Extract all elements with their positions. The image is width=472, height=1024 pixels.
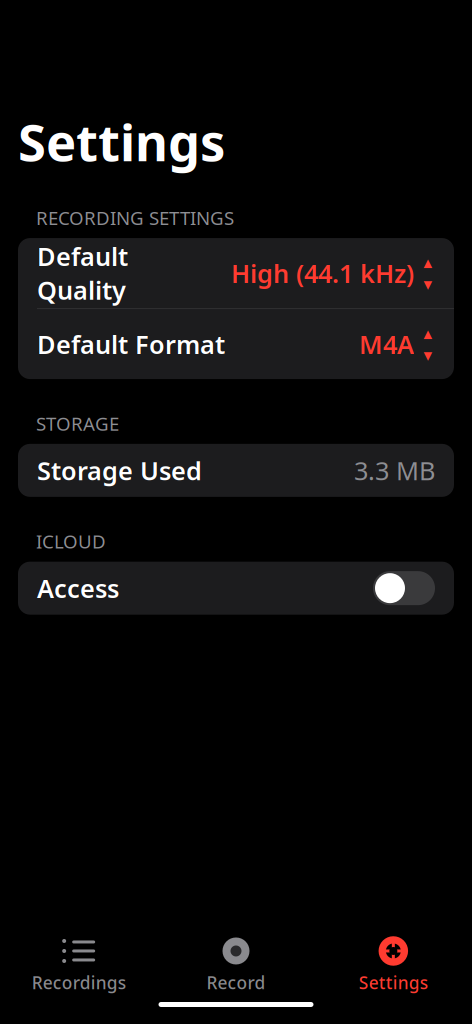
staticText: Access [37,571,119,605]
staticText: Recordings [32,971,126,994]
staticText: ▴ [423,323,432,343]
button[interactable]: Settings [315,938,472,994]
staticText: Default Format [37,327,225,361]
staticText: ▾ [423,345,432,365]
staticText: STORAGE [36,411,119,436]
staticText: Storage Used [37,453,202,487]
staticText: Settings [359,971,428,994]
button[interactable]: Record [157,938,315,994]
button[interactable]: Default Format [18,309,454,379]
button[interactable]: Default Quality [18,238,454,308]
staticText: High (44.1 kHz) [231,256,414,290]
staticText: ICLOUD [36,529,106,554]
staticText: Settings [18,108,225,175]
staticText: Default Quality [37,239,128,307]
staticText: 3.3 MB [354,453,435,487]
staticText: ▾ [423,274,432,294]
button[interactable]: Recordings [0,938,157,994]
staticText: M4A [359,327,414,361]
button[interactable]: Access [18,562,454,615]
staticText: RECORDING SETTINGS [36,205,234,230]
staticText: Record [206,971,265,994]
staticText: ▴ [423,252,432,272]
